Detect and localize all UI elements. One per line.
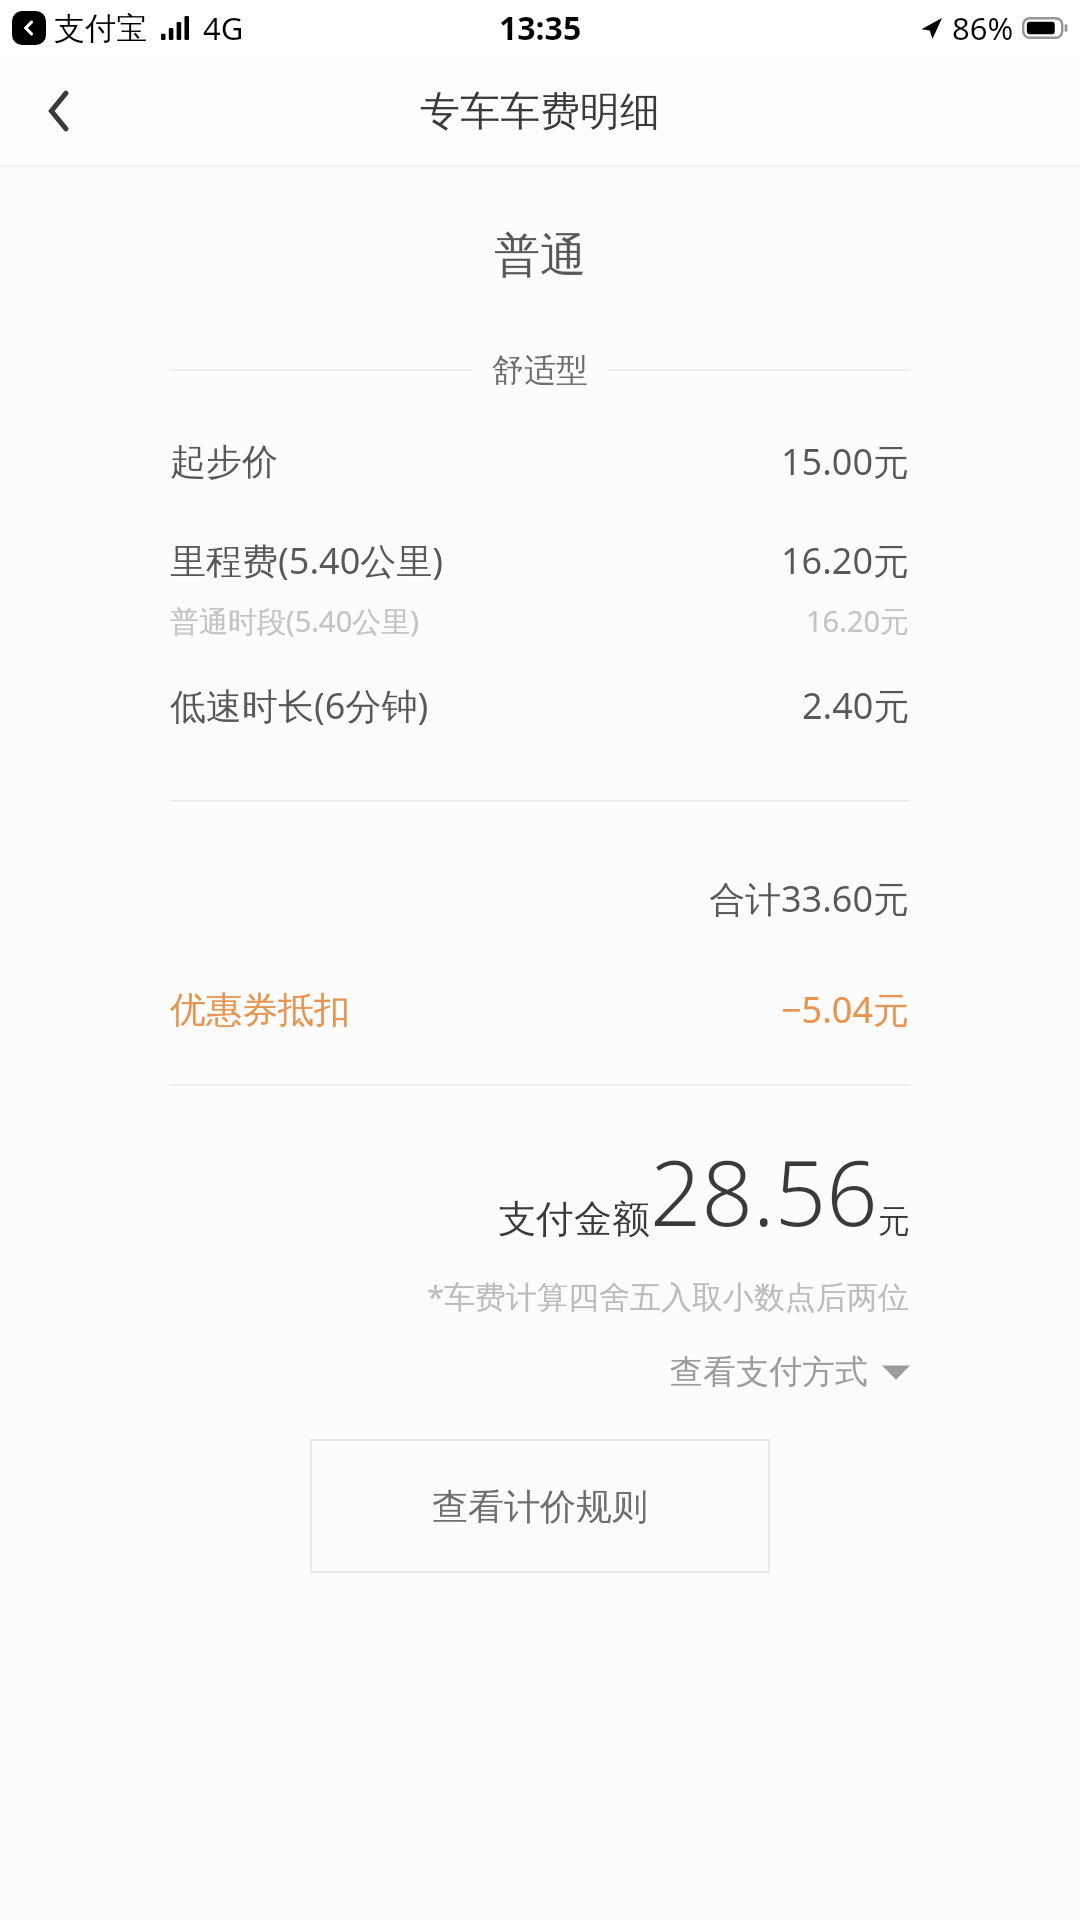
staticText: 2.40元 — [802, 681, 910, 730]
staticText: 28.56 — [650, 1130, 878, 1253]
button[interactable]: 返回 — [24, 76, 94, 146]
staticText: 普通时段(5.40公里) — [170, 601, 419, 641]
button[interactable]: 返回支付宝 — [12, 11, 46, 45]
staticText: 查看计价规则 — [432, 1484, 648, 1529]
staticText: 支付金额 — [498, 1195, 650, 1243]
button[interactable]: 查看支付方式 — [670, 1343, 910, 1401]
staticText: 普通 — [494, 227, 586, 285]
staticText: 86% — [952, 7, 1014, 49]
staticText: 元 — [878, 1201, 910, 1241]
staticText: 舒适型 — [492, 350, 588, 390]
staticText: 里程费(5.40公里) — [170, 536, 444, 585]
staticText: −5.04元 — [781, 985, 910, 1034]
staticText: 查看支付方式 — [670, 1351, 868, 1393]
staticText: 低速时长(6分钟) — [170, 681, 429, 730]
staticText: 支付宝 — [54, 9, 147, 48]
staticText: 16.20元 — [781, 536, 910, 585]
staticText: 15.00元 — [781, 437, 910, 486]
staticText: 专车车费明细 — [420, 86, 660, 136]
staticText: *车费计算四舍五入取小数点后两位 — [427, 1275, 910, 1317]
staticText: 合计33.60元 — [709, 874, 910, 923]
staticText: 13:35 — [499, 6, 582, 50]
staticText: 4G — [203, 7, 244, 49]
staticText: 优惠券抵扣 — [170, 987, 350, 1032]
staticText: 起步价 — [170, 439, 278, 484]
staticText: 16.20元 — [806, 601, 910, 641]
button[interactable]: 查看计价规则 — [310, 1439, 770, 1573]
